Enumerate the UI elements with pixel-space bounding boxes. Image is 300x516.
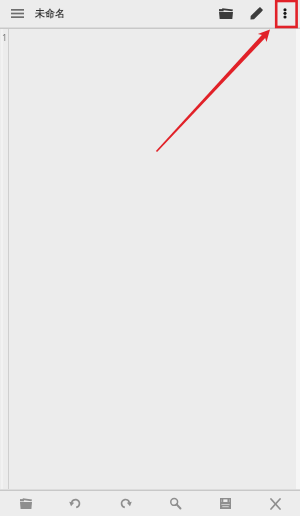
button[interactable]: Close [250,489,300,516]
staticText: 未命名 [35,7,65,20]
button[interactable]: Search [150,489,200,516]
button[interactable]: Open [0,489,50,516]
button[interactable]: More options [270,0,300,29]
button[interactable]: Redo [100,489,150,516]
button[interactable]: Navigation menu [0,0,35,29]
staticText: 1 [2,31,8,43]
button[interactable]: Edit [241,0,270,29]
button[interactable]: Undo [50,489,100,516]
button[interactable]: Save [200,489,250,516]
button[interactable]: Open file [210,0,241,29]
